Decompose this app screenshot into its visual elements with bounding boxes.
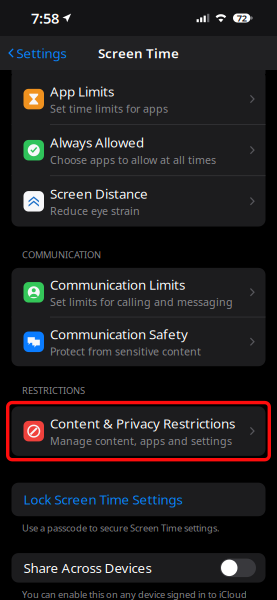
button[interactable]: Content & Privacy Restrictions: [11, 406, 265, 456]
staticText: Settings: [16, 44, 66, 62]
staticText: 72: [237, 12, 247, 24]
staticText: Protect from sensitive content: [50, 344, 201, 358]
staticText: Choose apps to allow at all times: [50, 153, 216, 167]
button[interactable]: Lock Screen Time Settings: [11, 483, 265, 516]
staticText: COMMUNICATION: [22, 248, 101, 261]
button[interactable]: Settings: [0, 36, 74, 70]
staticText: 7:58: [31, 8, 59, 28]
staticText: Communication Safety: [50, 325, 188, 343]
staticText: Set time limits for apps: [50, 102, 168, 116]
button[interactable]: Always Allowed: [11, 125, 265, 175]
staticText: Use a passcode to secure Screen Time set…: [22, 522, 220, 534]
staticText: Set limits for calling and messaging: [50, 295, 233, 309]
staticText: Screen Time: [98, 44, 179, 62]
staticText: RESTRICTIONS: [22, 384, 85, 397]
staticText: Reduce eye strain: [50, 204, 140, 218]
button[interactable]: App Limits: [11, 74, 265, 124]
staticText: Manage content, apps and settings: [50, 434, 232, 448]
button[interactable]: Share Across Devices: [11, 553, 265, 583]
staticText: Communication Limits: [50, 276, 185, 293]
staticText: Lock Screen Time Settings: [23, 491, 182, 508]
staticText: Share Across Devices: [23, 559, 151, 577]
button[interactable]: Communication Safety: [11, 317, 265, 366]
button[interactable]: Screen Distance: [11, 176, 265, 226]
button[interactable]: Communication Limits: [11, 268, 265, 317]
staticText: Always Allowed: [50, 133, 144, 151]
staticText: Content & Privacy Restrictions: [50, 414, 235, 432]
staticText: App Limits: [50, 82, 114, 100]
staticText: You can enable this on any device signed…: [22, 588, 247, 600]
staticText: Screen Distance: [50, 185, 148, 202]
